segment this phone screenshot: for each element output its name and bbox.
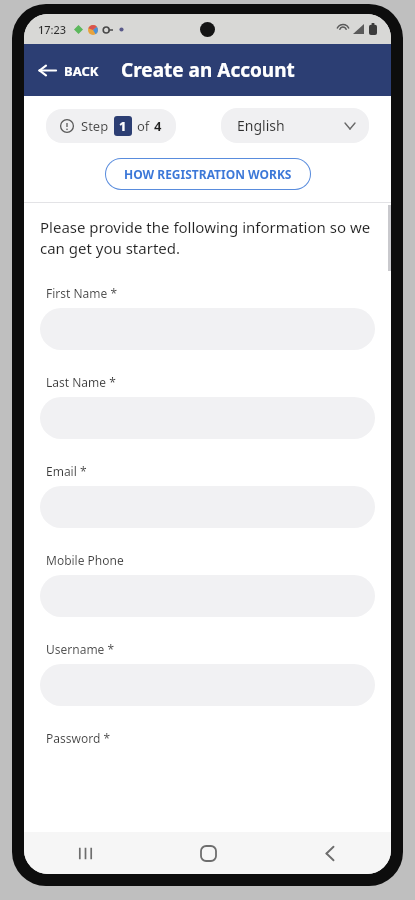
staticText: 4 — [154, 117, 162, 135]
staticText: Username * — [46, 641, 115, 657]
staticText: Mobile Phone — [46, 552, 124, 568]
button[interactable]: HOW REGISTRATION WORKS — [104, 157, 312, 191]
staticText: Create an Account — [121, 57, 295, 83]
staticText: Please provide the following information… — [40, 217, 375, 259]
staticText: HOW REGISTRATION WORKS — [124, 166, 292, 182]
staticText: Password * — [46, 730, 111, 746]
staticText: First Name * — [46, 285, 118, 301]
staticText: Last Name * — [46, 374, 116, 390]
staticText: Email * — [46, 463, 87, 479]
staticText: 17:23 — [38, 22, 67, 37]
staticText: 1 — [119, 117, 127, 135]
button[interactable]: Home — [147, 832, 269, 874]
button[interactable]: Back — [269, 832, 391, 874]
button[interactable]: BACK — [24, 55, 109, 86]
staticText: Step — [81, 117, 109, 135]
button[interactable]: Step — [46, 109, 176, 143]
button[interactable]: Recent apps — [24, 832, 147, 874]
staticText: English — [237, 116, 285, 135]
staticText: BACK — [64, 62, 99, 80]
staticText: of — [137, 117, 150, 135]
button[interactable]: English — [221, 108, 369, 143]
